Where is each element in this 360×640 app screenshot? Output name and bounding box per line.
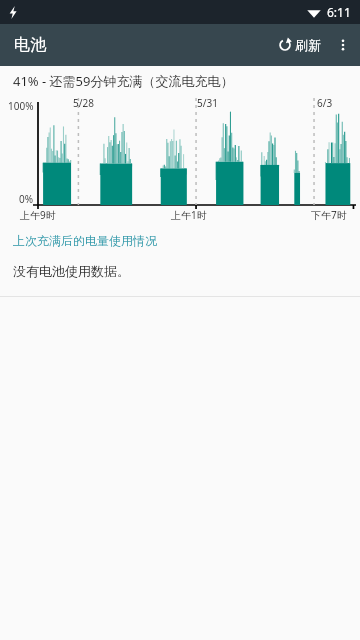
staticText: 没有电池使用数据。: [13, 263, 130, 279]
staticText: 电池: [14, 35, 46, 55]
button[interactable]: More options: [326, 28, 360, 62]
staticText: 上午9时: [20, 208, 56, 222]
staticText: 6/3: [317, 96, 333, 110]
staticText: 100%: [8, 99, 34, 113]
staticText: 上午1时: [171, 208, 207, 222]
staticText: 下午7时: [311, 208, 347, 222]
staticText: 刷新: [295, 37, 321, 53]
staticText: 5/28: [73, 96, 94, 110]
staticText: 6:11: [327, 4, 351, 20]
button[interactable]: 刷新: [273, 29, 326, 61]
staticText: 41% - 还需59分钟充满（交流电充电）: [13, 72, 234, 90]
staticText: 5/31: [197, 96, 218, 110]
staticText: 0%: [19, 192, 34, 206]
button[interactable]: 上次充满后的电量使用情况: [0, 231, 170, 250]
